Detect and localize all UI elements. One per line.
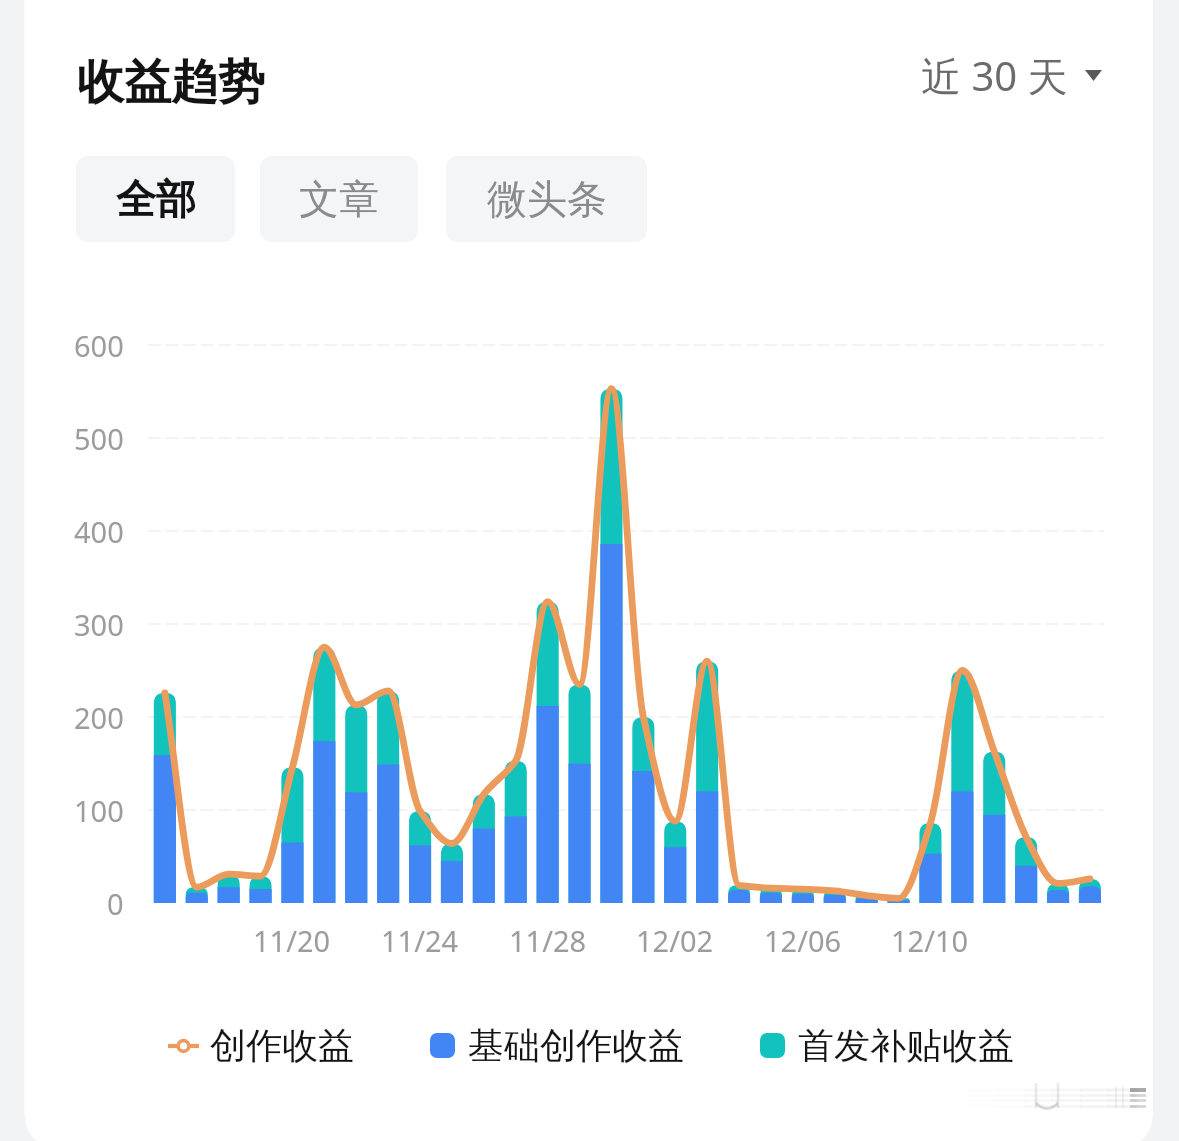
staticText: 300 [74,605,124,644]
staticText: 400 [74,512,124,551]
staticText: 微头条 [487,174,607,224]
staticText: 11/20 [253,921,331,960]
staticText: 600 [74,326,124,365]
staticText: 全部 [116,174,196,224]
staticText: 12/06 [764,921,842,960]
staticText: 首发补贴收益 [798,1023,1014,1068]
staticText: 收益趋势 [77,53,265,112]
staticText: 12/10 [891,921,969,960]
staticText: 基础创作收益 [468,1023,684,1068]
staticText: 0 [107,884,124,923]
button[interactable]: 首发补贴收益 [760,1023,1014,1068]
staticText: 200 [74,698,124,737]
staticText: 100 [74,791,124,830]
button[interactable]: 微头条 [446,156,647,242]
button[interactable]: 创作收益 [168,1023,354,1068]
staticText: 12/02 [636,921,714,960]
button[interactable]: 近 30 天 [921,48,1102,103]
staticText: 11/24 [381,921,459,960]
staticText: 500 [74,419,124,458]
staticText: 近 30 天 [921,48,1068,103]
button[interactable]: 文章 [260,156,418,242]
staticText: 创作收益 [210,1023,354,1068]
button[interactable]: 基础创作收益 [430,1023,684,1068]
other: Select date range [1085,70,1102,81]
button[interactable]: 全部 [76,156,235,242]
staticText: 文章 [299,174,379,224]
staticText: 11/28 [509,921,587,960]
